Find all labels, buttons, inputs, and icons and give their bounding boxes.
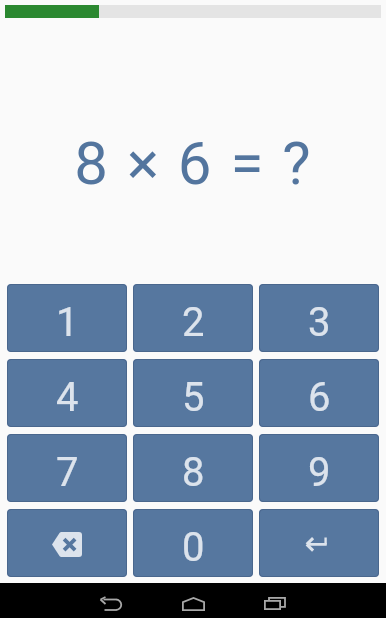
staticText: 4 <box>56 374 79 421</box>
button[interactable]: 9 <box>259 434 379 502</box>
staticText: 3 <box>308 299 331 346</box>
button[interactable]: 6 <box>259 359 379 427</box>
staticText: 2 <box>182 299 205 346</box>
button[interactable]: 2 <box>133 284 253 352</box>
staticText: 5 <box>182 374 205 421</box>
button[interactable]: 4 <box>7 359 127 427</box>
button[interactable] <box>70 583 152 618</box>
button[interactable]: 1 <box>7 284 127 352</box>
button[interactable] <box>259 509 379 577</box>
staticText: 7 <box>56 449 79 496</box>
staticText: 0 <box>182 524 205 571</box>
button[interactable]: 0 <box>133 509 253 577</box>
staticText: 6 <box>308 374 331 421</box>
staticText: 8 × 6 = ? <box>74 128 313 198</box>
button[interactable]: 5 <box>133 359 253 427</box>
button[interactable] <box>234 583 316 618</box>
button[interactable]: 8 <box>133 434 253 502</box>
button[interactable] <box>7 509 127 577</box>
button[interactable]: 7 <box>7 434 127 502</box>
staticText: 1 <box>56 299 79 346</box>
staticText: 8 <box>182 449 205 496</box>
button[interactable]: 3 <box>259 284 379 352</box>
button[interactable] <box>152 583 234 618</box>
staticText: 9 <box>308 449 331 496</box>
